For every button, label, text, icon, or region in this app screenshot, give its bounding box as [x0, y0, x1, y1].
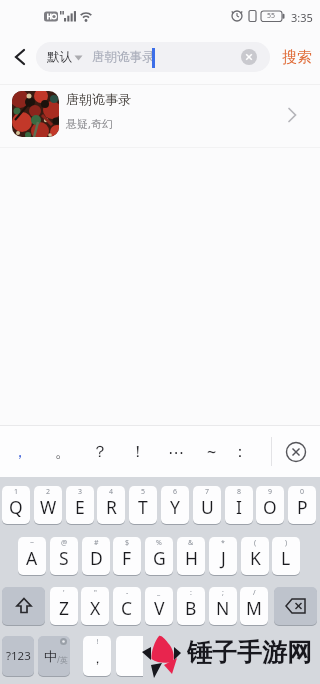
staticText: A — [26, 546, 38, 570]
button[interactable]: ; — [209, 587, 237, 625]
button[interactable]: ~ — [18, 537, 46, 575]
button[interactable]: : — [177, 587, 205, 625]
staticText: 3:35 — [291, 10, 313, 24]
button[interactable]: ， — [8, 438, 32, 466]
staticText: 唐朝诡事录 — [66, 91, 131, 107]
button[interactable]: * — [209, 537, 237, 575]
staticText: % — [156, 538, 162, 548]
button[interactable] — [4, 43, 32, 71]
button[interactable] — [241, 49, 257, 65]
staticText: ， — [12, 442, 28, 462]
staticText: 搜索 — [282, 48, 312, 67]
button[interactable]: " — [81, 587, 109, 625]
staticText: D — [90, 546, 103, 570]
staticText: Q — [9, 495, 23, 519]
button[interactable]: $ — [113, 537, 141, 575]
staticText: 7 — [205, 487, 210, 497]
button[interactable]: / — [240, 587, 268, 625]
staticText: ： — [232, 442, 248, 462]
button[interactable] — [284, 440, 308, 464]
staticText: K — [250, 546, 261, 570]
button[interactable]: 搜索 — [276, 42, 318, 72]
button[interactable]: ( — [241, 537, 269, 575]
button[interactable]: 5 — [129, 486, 157, 524]
button[interactable]: 8 — [225, 486, 253, 524]
button[interactable] — [242, 636, 317, 676]
staticText: & — [188, 538, 194, 548]
staticText: Z — [59, 596, 70, 620]
button[interactable]: 0 — [288, 486, 316, 524]
button[interactable] — [116, 636, 202, 676]
staticText: ？ — [92, 442, 108, 462]
button[interactable]: @ — [50, 537, 78, 575]
staticText: G — [153, 546, 166, 570]
staticText: 55 — [267, 11, 276, 21]
button[interactable]: 6 — [161, 486, 189, 524]
staticText: @ — [61, 538, 68, 548]
button[interactable] — [36, 42, 270, 72]
button[interactable] — [2, 587, 45, 625]
staticText: ?123 — [6, 648, 31, 664]
staticText: H — [185, 546, 198, 570]
button[interactable] — [0, 84, 320, 146]
staticText: E — [75, 495, 85, 519]
staticText: 6 — [173, 487, 178, 497]
staticText: ~ — [30, 538, 35, 548]
button[interactable]: 。 — [51, 438, 75, 466]
staticText: 9 — [268, 487, 273, 497]
staticText: 中 — [44, 648, 57, 664]
button[interactable]: & — [177, 537, 205, 575]
staticText: L — [281, 546, 291, 570]
staticText: S — [59, 546, 69, 570]
button[interactable]: ！ — [126, 438, 150, 466]
staticText: O — [263, 495, 277, 519]
button[interactable] — [274, 587, 317, 625]
staticText: U — [201, 495, 214, 519]
button[interactable]: 9 — [256, 486, 284, 524]
button[interactable]: 7 — [193, 486, 221, 524]
button[interactable]: 3 — [66, 486, 94, 524]
button[interactable]: 中 — [38, 636, 70, 676]
button[interactable]: ⋯ — [164, 438, 188, 466]
staticText: 3 — [78, 487, 83, 497]
staticText: _ — [157, 588, 161, 598]
staticText: P — [297, 495, 308, 519]
staticText: 。 — [216, 650, 229, 666]
button[interactable]: 1 — [2, 486, 30, 524]
staticText: ！ — [130, 442, 146, 462]
button[interactable]: ) — [272, 537, 300, 575]
button[interactable]: - — [113, 587, 141, 625]
staticText: / — [253, 588, 256, 598]
button[interactable]: ~ — [200, 438, 224, 466]
button[interactable]: % — [145, 537, 173, 575]
staticText: 2 — [46, 487, 51, 497]
staticText: ！ — [94, 637, 101, 646]
button[interactable]: ?123 — [2, 636, 34, 676]
staticText: ， — [91, 650, 104, 666]
staticText: 锤子手游网 — [187, 637, 312, 667]
staticText: ⋯ — [168, 443, 184, 462]
staticText: F — [122, 546, 132, 570]
staticText: 1 — [14, 487, 19, 497]
staticText: X — [90, 596, 101, 620]
button[interactable]: ？ — [88, 438, 112, 466]
staticText: - — [126, 588, 129, 598]
button[interactable]: _ — [145, 587, 173, 625]
button[interactable]: # — [82, 537, 110, 575]
staticText: 0 — [300, 487, 305, 497]
button[interactable]: ' — [50, 587, 78, 625]
button[interactable]: ！ — [83, 636, 111, 676]
staticText: J — [221, 546, 226, 570]
button[interactable]: ： — [228, 438, 252, 466]
staticText: $ — [125, 538, 130, 548]
staticText: N — [216, 596, 230, 620]
button[interactable]: 4 — [97, 486, 125, 524]
button[interactable]: 。 — [208, 636, 236, 676]
staticText: 。 — [55, 442, 71, 462]
staticText: M — [246, 596, 262, 620]
staticText: 5 — [141, 487, 146, 497]
staticText: " — [94, 588, 97, 598]
staticText: : — [190, 588, 192, 598]
button[interactable]: 2 — [34, 486, 62, 524]
staticText: Y — [170, 495, 180, 519]
